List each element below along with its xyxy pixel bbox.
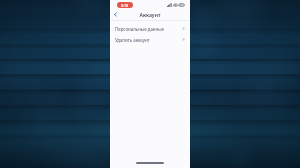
- button[interactable]: Back: [110, 9, 121, 20]
- staticText: Аккаунт: [139, 11, 161, 18]
- button[interactable]: Персональные данные: [110, 23, 190, 34]
- staticText: Персональные данные: [115, 26, 182, 32]
- staticText: 0:18: [121, 3, 129, 8]
- staticText: Удалить аккаунт: [115, 37, 182, 43]
- button[interactable]: Удалить аккаунт: [110, 34, 190, 45]
